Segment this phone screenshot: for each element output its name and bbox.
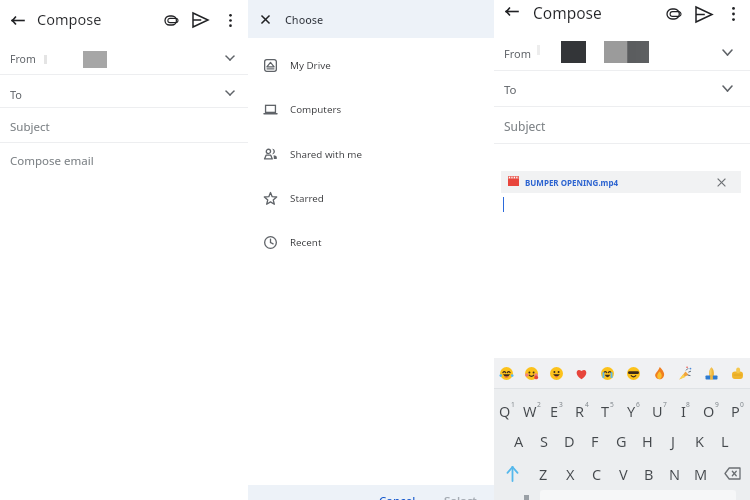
button[interactable]: Attach file [667, 9, 681, 19]
button[interactable]: K [686, 425, 712, 457]
staticText: From [504, 46, 531, 61]
button[interactable]: Recent [248, 221, 494, 265]
staticText: Compose [533, 2, 602, 23]
staticText: My Drive [290, 59, 331, 72]
staticText: 8 [686, 400, 690, 409]
staticText: Compose email [10, 153, 94, 169]
button[interactable]: Backspace [714, 457, 750, 490]
staticText: M [694, 464, 708, 484]
staticText: K [695, 431, 704, 451]
button[interactable]: Expand from [718, 44, 736, 60]
button[interactable]: Symbols [512, 490, 540, 500]
button[interactable]: Back [506, 7, 518, 16]
staticText: 5 [610, 400, 614, 409]
button[interactable]: X [557, 457, 584, 490]
button[interactable] [0, 40, 248, 74]
staticText: 4 [585, 400, 589, 409]
button[interactable]: O [698, 396, 724, 425]
staticText: 2 [537, 400, 541, 409]
staticText: Choose [285, 12, 324, 27]
button[interactable]: N [662, 457, 688, 490]
button[interactable]: Y [620, 396, 646, 425]
button[interactable]: U [646, 396, 672, 425]
staticText: 9 [715, 400, 719, 409]
button[interactable]: V [610, 457, 636, 490]
button[interactable]: More options [732, 7, 735, 21]
button[interactable]: Folded hands [698, 358, 724, 388]
staticText: BUMPER OPENING.mp4 [525, 177, 619, 188]
button[interactable]: Z [530, 457, 557, 490]
button[interactable]: Remove attachment [715, 176, 727, 188]
button[interactable]: T [594, 396, 620, 425]
button[interactable]: E [544, 396, 569, 425]
staticText: B [644, 464, 654, 484]
button[interactable]: Grinning [544, 358, 569, 388]
button[interactable]: Attach file [165, 16, 178, 25]
staticText: O [703, 401, 715, 421]
button[interactable]: My Drive [248, 44, 494, 88]
button[interactable]: Red heart [569, 358, 594, 388]
button[interactable]: B [636, 457, 662, 490]
button[interactable]: Shift [494, 457, 530, 490]
button[interactable]: F [582, 425, 608, 457]
staticText: 1 [511, 400, 515, 409]
button[interactable]: Cancel [379, 485, 421, 500]
button[interactable]: Starred [248, 177, 494, 221]
button[interactable] [0, 75, 248, 107]
button[interactable]: Laughing [494, 358, 519, 388]
staticText: R [575, 401, 585, 421]
button[interactable]: W [519, 396, 544, 425]
staticText: T [601, 401, 610, 421]
button[interactable]: Crying [594, 358, 620, 388]
button[interactable]: M [688, 457, 714, 490]
button[interactable]: Shared with me [248, 133, 494, 177]
staticText: I [681, 401, 686, 421]
staticText: Starred [290, 192, 324, 205]
staticText: Cancel [379, 493, 416, 500]
staticText: P [731, 401, 740, 421]
staticText: From [10, 52, 36, 66]
button[interactable]: Close [258, 12, 272, 26]
button[interactable]: Send [696, 7, 712, 22]
button[interactable]: Party popper [672, 358, 698, 388]
staticText: F [591, 431, 599, 451]
button[interactable]: BUMPER OPENING.mp4 [501, 171, 741, 193]
button[interactable]: Expand to [221, 85, 239, 101]
button[interactable]: Back [12, 16, 24, 25]
button[interactable]: Expand to [718, 80, 736, 96]
button[interactable]: S [531, 425, 556, 457]
button[interactable]: I [672, 396, 698, 425]
button[interactable]: R [569, 396, 594, 425]
button[interactable]: Smiling with hearts [519, 358, 544, 388]
button[interactable] [0, 108, 248, 142]
staticText: J [671, 431, 675, 451]
button[interactable]: Close [248, 0, 494, 38]
staticText: Compose [37, 9, 102, 29]
staticText: V [619, 464, 628, 484]
button[interactable]: L [712, 425, 738, 457]
button[interactable]: Thumbs up [724, 358, 750, 388]
button[interactable]: Expand from [221, 50, 239, 66]
button[interactable]: J [660, 425, 686, 457]
staticText: 6 [636, 400, 640, 409]
button[interactable]: Cool [620, 358, 646, 388]
staticText: 7 [663, 400, 667, 409]
button[interactable]: G [608, 425, 634, 457]
button[interactable]: D [556, 425, 582, 457]
button[interactable]: Send [193, 13, 208, 27]
button[interactable]: Q [494, 396, 519, 425]
button[interactable]: P [724, 396, 750, 425]
button[interactable]: More options [229, 14, 232, 27]
staticText: Z [539, 464, 548, 484]
staticText: To [10, 87, 23, 102]
button[interactable]: Select [444, 485, 484, 500]
staticText: Recent [290, 236, 322, 249]
button[interactable]: C [584, 457, 610, 490]
button[interactable]: H [634, 425, 660, 457]
staticText: H [642, 431, 653, 451]
button[interactable] [0, 143, 248, 177]
button[interactable]: A [506, 425, 531, 457]
button[interactable]: Fire [646, 358, 672, 388]
button[interactable]: Computers [248, 88, 494, 132]
